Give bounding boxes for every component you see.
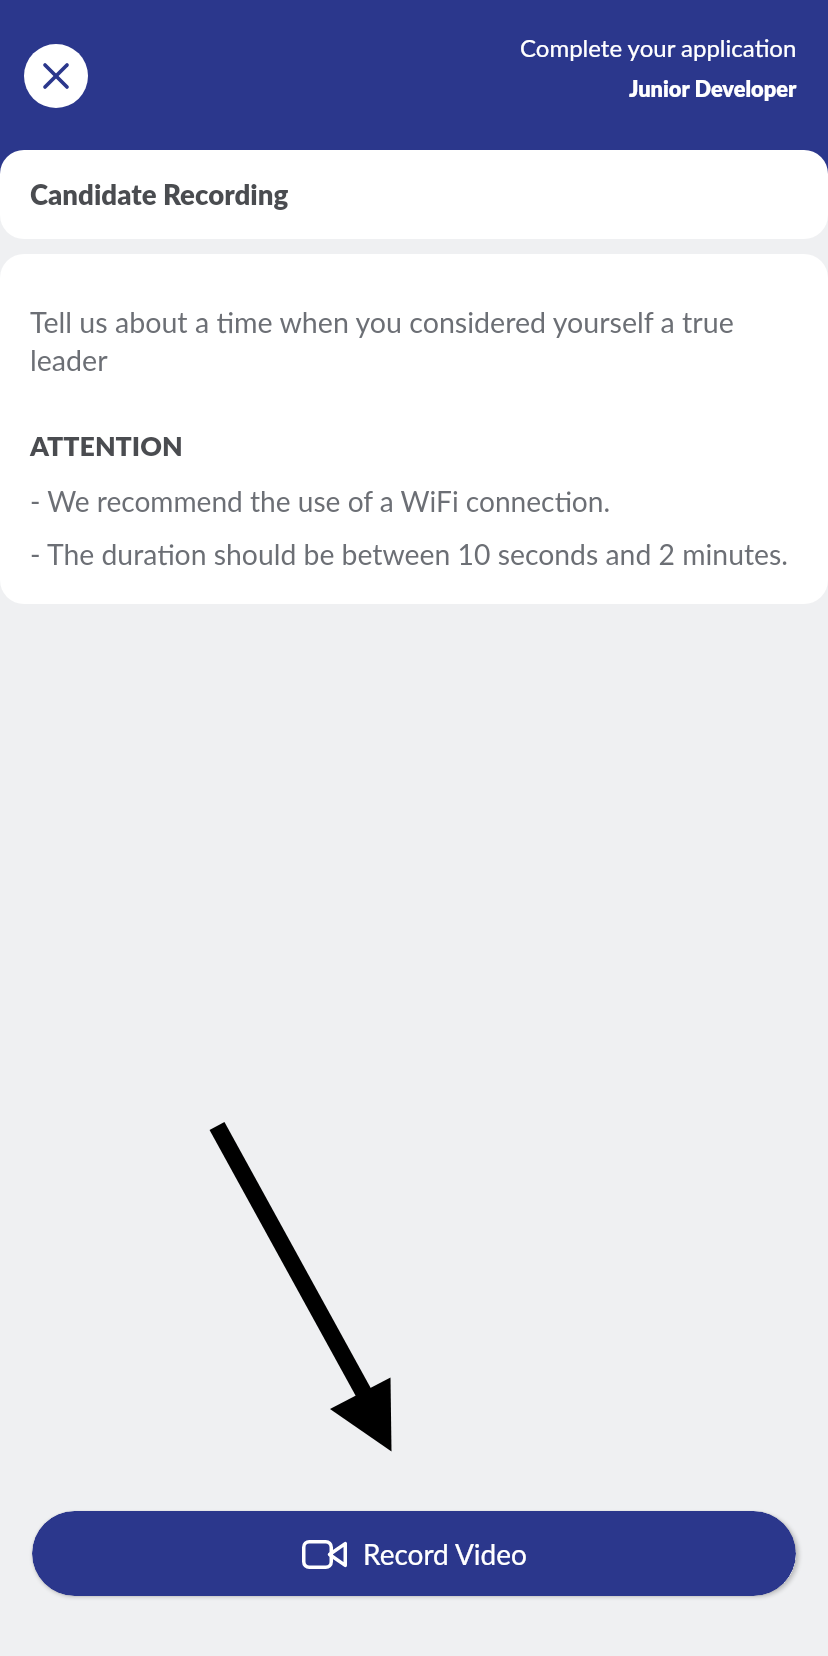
staticText: Candidate Recording	[30, 178, 289, 211]
staticText: Record Video	[363, 1537, 527, 1571]
staticText: - We recommend the use of a WiFi connect…	[30, 484, 611, 518]
staticText: - The duration should be between 10 seco…	[30, 537, 788, 571]
staticText: Complete your application	[520, 33, 797, 62]
staticText: Tell us about a time when you considered…	[30, 305, 800, 377]
button[interactable]: Record Video	[32, 1511, 796, 1596]
staticText: Junior Developer	[629, 75, 797, 101]
button[interactable]: Candidate Recording	[0, 150, 828, 239]
staticText: ATTENTION	[30, 430, 183, 462]
button[interactable]: Close	[24, 44, 88, 108]
